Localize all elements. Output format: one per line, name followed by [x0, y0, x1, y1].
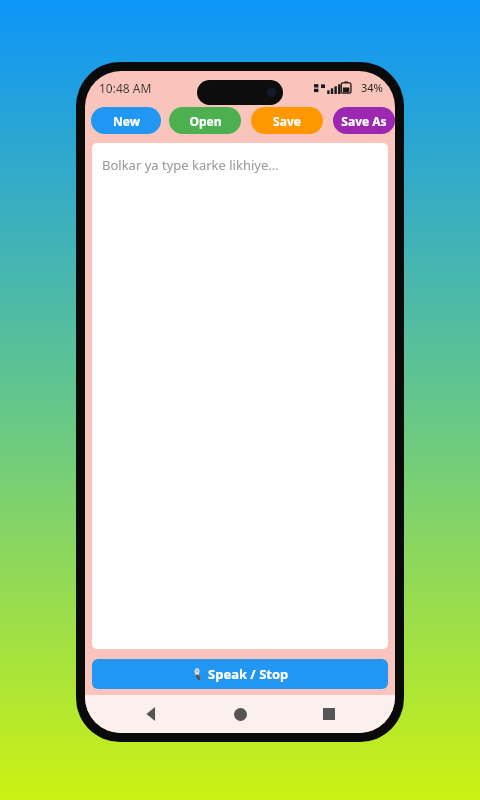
staticText: New [113, 113, 140, 129]
button[interactable]: Save As [333, 107, 395, 134]
staticText: 34% [361, 80, 383, 95]
button[interactable]: Save [251, 107, 323, 134]
button[interactable]: Recent apps [307, 695, 351, 733]
button[interactable]: Back [130, 695, 174, 733]
staticText: Speak / Stop [208, 665, 289, 683]
staticText: 10:48 AM [99, 80, 152, 96]
staticText: Save As [341, 113, 387, 129]
staticText: Save [273, 113, 301, 129]
button[interactable]: Open [169, 107, 241, 134]
button[interactable]: Home [218, 695, 262, 733]
button[interactable]: Bolkar ya type karke likhiye... [92, 143, 388, 649]
button[interactable]: New [91, 107, 161, 134]
staticText: Open [189, 113, 222, 129]
staticText: Bolkar ya type karke likhiye... [102, 156, 279, 174]
button[interactable]: Speak / Stop [92, 659, 388, 689]
